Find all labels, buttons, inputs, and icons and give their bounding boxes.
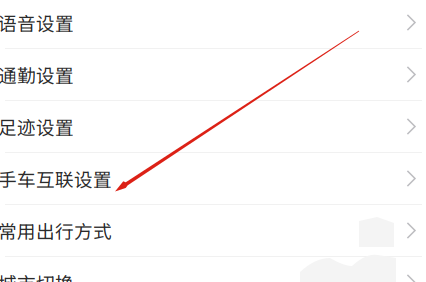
button[interactable]: 语音设置 bbox=[0, 0, 426, 49]
staticText: 通勤设置 bbox=[0, 61, 74, 88]
button[interactable]: 通勤设置 bbox=[0, 49, 426, 101]
staticText: 城市切换 bbox=[0, 269, 74, 282]
button[interactable]: 足迹设置 bbox=[0, 101, 426, 153]
button[interactable]: 城市切换 bbox=[0, 257, 426, 282]
button[interactable]: 手车互联设置 bbox=[0, 153, 426, 205]
staticText: 常用出行方式 bbox=[0, 217, 112, 244]
staticText: 手车互联设置 bbox=[0, 165, 112, 192]
staticText: 语音设置 bbox=[0, 9, 74, 36]
button[interactable]: 常用出行方式 bbox=[0, 205, 426, 257]
staticText: 足迹设置 bbox=[0, 113, 74, 140]
